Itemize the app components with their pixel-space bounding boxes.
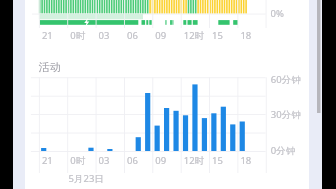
button[interactable] — [0, 0, 336, 189]
